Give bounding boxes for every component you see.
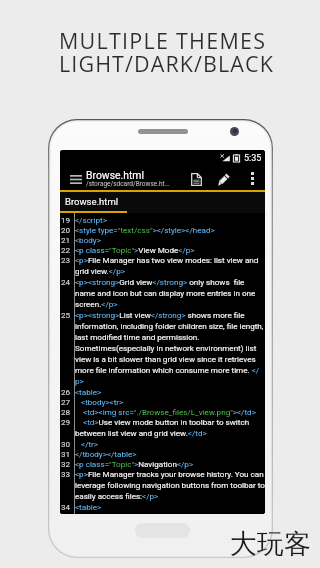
staticText: 27 — [61, 397, 71, 406]
staticText: 29 — [61, 417, 71, 426]
staticText: 31 — [61, 449, 71, 458]
staticText: MULTIPLE THEMES — [59, 26, 267, 55]
staticText: <p class="Topic">View Mode</p> — [75, 245, 195, 254]
button[interactable]: Browse.html — [60, 192, 127, 211]
staticText: <table> — [75, 502, 102, 511]
staticText: <p>File Manager tracks your browse histo… — [75, 469, 265, 501]
button[interactable]: More options — [245, 168, 260, 189]
staticText: 大玩客 — [230, 527, 311, 561]
staticText: 5:35 — [244, 153, 262, 164]
button[interactable]: Navigation menu — [65, 168, 87, 190]
staticText: <tbody><tr> — [75, 397, 124, 406]
staticText: <p class="Topic">Navigation</p> — [75, 459, 194, 468]
staticText: <td>Use view mode button in toolbar to s… — [75, 417, 265, 438]
staticText: 28 — [61, 407, 71, 416]
staticText: <p><strong>Grid view</strong> only shows… — [75, 277, 265, 309]
staticText: <p>File Manager has two view modes: list… — [75, 255, 265, 276]
staticText: 21 — [61, 235, 71, 244]
staticText: 19 — [61, 215, 71, 224]
staticText: 22 — [61, 245, 71, 254]
staticText: 30 — [61, 439, 71, 448]
staticText: 20 — [61, 225, 71, 234]
staticText: 24 — [61, 277, 71, 286]
staticText: 23 — [61, 255, 71, 264]
staticText: <p><strong>List view</strong> shows more… — [75, 310, 265, 386]
staticText: <table> — [75, 387, 102, 396]
button[interactable]: Open file — [186, 169, 207, 189]
staticText: <body> — [75, 235, 101, 244]
staticText: <style type="text/css"></style></head> — [75, 225, 215, 234]
staticText: 25 — [61, 310, 71, 319]
staticText: Browse.html — [65, 196, 119, 207]
staticText: /storage/sdcard/Browse.ht... — [86, 180, 170, 188]
staticText: Browse.html — [86, 169, 145, 181]
staticText: </tr> — [75, 439, 99, 448]
staticText: 34 — [61, 502, 71, 511]
staticText: 33 — [61, 469, 71, 478]
staticText: 26 — [61, 387, 71, 396]
staticText: 32 — [61, 459, 71, 468]
staticText: </tbody></table> — [75, 449, 137, 458]
button[interactable]: Edit — [213, 169, 234, 189]
staticText: </script> — [75, 215, 108, 224]
staticText: LIGHT/DARK/BLACK — [59, 49, 274, 78]
staticText: <td><img src="./Browse_files/L_view.png"… — [75, 407, 256, 416]
